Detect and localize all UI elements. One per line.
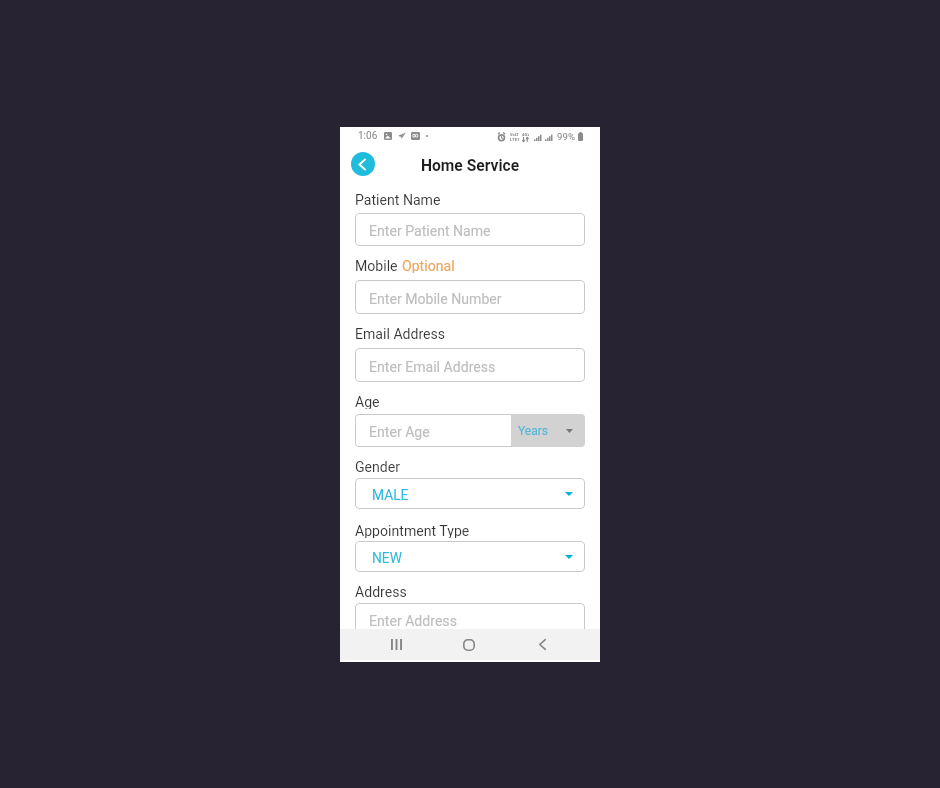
staticText: Enter Age <box>369 424 430 441</box>
button[interactable]: MALE <box>355 478 585 509</box>
staticText: 99% <box>557 131 575 142</box>
staticText: Patient Name <box>355 192 441 207</box>
button[interactable]: Home <box>446 629 492 660</box>
button[interactable]: Recent apps <box>373 629 419 660</box>
button[interactable]: Age unit <box>511 414 585 447</box>
button[interactable]: Enter Mobile Number <box>355 280 585 314</box>
staticText: Enter Patient Name <box>369 223 491 240</box>
staticText: Enter Address <box>369 613 457 630</box>
staticText: Email Address <box>355 326 446 341</box>
staticText: Home Service <box>421 157 520 175</box>
staticText: Appointment Type <box>355 523 470 538</box>
staticText: Gender <box>355 459 401 474</box>
staticText: MALE <box>372 487 409 503</box>
staticText: Optional <box>402 258 455 273</box>
button[interactable]: NEW <box>355 541 585 572</box>
staticText: 1:06 <box>358 130 378 142</box>
button[interactable]: Back <box>351 152 375 176</box>
button[interactable]: Enter Address <box>355 603 585 636</box>
staticText: 4G+ <box>522 132 529 137</box>
staticText: Enter Email Address <box>369 359 496 376</box>
button[interactable]: Enter Patient Name <box>355 213 585 246</box>
staticText: NEW <box>372 550 402 566</box>
button[interactable]: Back <box>519 629 565 660</box>
staticText: Address <box>355 584 407 599</box>
staticText: Mobile <box>355 258 402 273</box>
staticText: Age <box>355 394 380 409</box>
staticText: VoLTE <box>510 132 519 137</box>
button[interactable]: Enter Email Address <box>355 348 585 382</box>
button[interactable]: Enter Age <box>355 414 512 447</box>
staticText: Enter Mobile Number <box>369 291 502 308</box>
staticText: Years <box>518 424 548 438</box>
staticText: LTE1 <box>510 137 519 142</box>
